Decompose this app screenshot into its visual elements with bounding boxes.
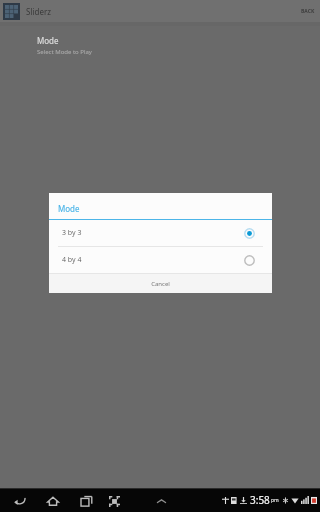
staticText: Sliderz [26, 6, 52, 17]
staticText: Mode [37, 35, 59, 46]
staticText: BACK [301, 8, 315, 15]
button[interactable]: Recent apps [74, 492, 98, 510]
staticText: pm [271, 497, 279, 504]
button[interactable]: 4 by 4 [49, 247, 272, 273]
button[interactable]: BACK [296, 4, 320, 19]
staticText: 4 by 4 [62, 255, 82, 265]
staticText: Mode [58, 203, 80, 214]
button[interactable]: 3 by 3 [49, 220, 272, 246]
staticText: Cancel [151, 280, 170, 288]
button[interactable]: Screenshot [103, 492, 125, 510]
button[interactable]: Home [41, 492, 65, 510]
button[interactable]: Back [8, 492, 32, 510]
staticText: 3:58 [250, 493, 270, 507]
staticText: Select Mode to Play [37, 48, 92, 56]
button[interactable]: Expand [152, 493, 170, 509]
staticText: 3 by 3 [62, 228, 82, 238]
button[interactable]: Cancel [49, 274, 272, 293]
